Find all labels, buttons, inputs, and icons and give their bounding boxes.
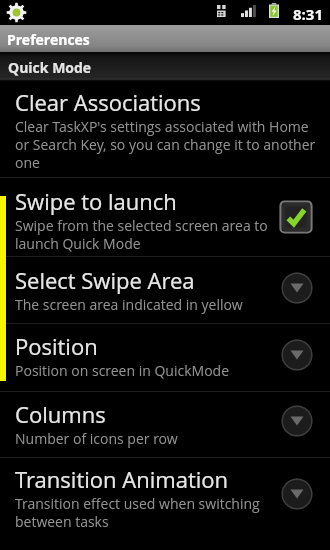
staticText: Clear TaskXP's settings associated with … — [15, 117, 326, 172]
button[interactable]: Select Swipe Area — [0, 257, 330, 323]
button[interactable]: Clear Associations — [0, 81, 330, 177]
staticText: Preferences — [7, 30, 90, 49]
button[interactable]: Open list — [280, 404, 314, 438]
button[interactable]: Transition Animation — [0, 458, 330, 538]
staticText: Swipe to launch — [15, 186, 177, 216]
staticText: Columns — [15, 399, 106, 429]
staticText: Transition Animation — [15, 464, 229, 494]
button[interactable]: Open list — [280, 338, 314, 372]
staticText: 8:31 — [293, 4, 323, 24]
button[interactable]: Open list — [280, 271, 314, 305]
staticText: Position — [15, 331, 98, 361]
staticText: Transition effect used when switching be… — [15, 494, 278, 531]
button[interactable]: Swipe to launch checkbox — [280, 201, 312, 233]
staticText: The screen area indicated in yellow — [15, 295, 243, 314]
staticText: Number of icons per row — [15, 429, 178, 448]
button[interactable]: Columns — [0, 392, 330, 457]
button[interactable]: Position — [0, 324, 330, 391]
staticText: Position on screen in QuickMode — [15, 361, 230, 380]
button[interactable]: Open list — [280, 477, 314, 511]
staticText: Quick Mode — [8, 58, 92, 77]
staticText: Clear Associations — [15, 87, 201, 117]
other: Settings notification — [7, 3, 26, 22]
button[interactable]: Swipe to launch — [0, 178, 330, 256]
staticText: Swipe from the selected screen area to l… — [15, 216, 278, 253]
staticText: Select Swipe Area — [15, 265, 195, 295]
